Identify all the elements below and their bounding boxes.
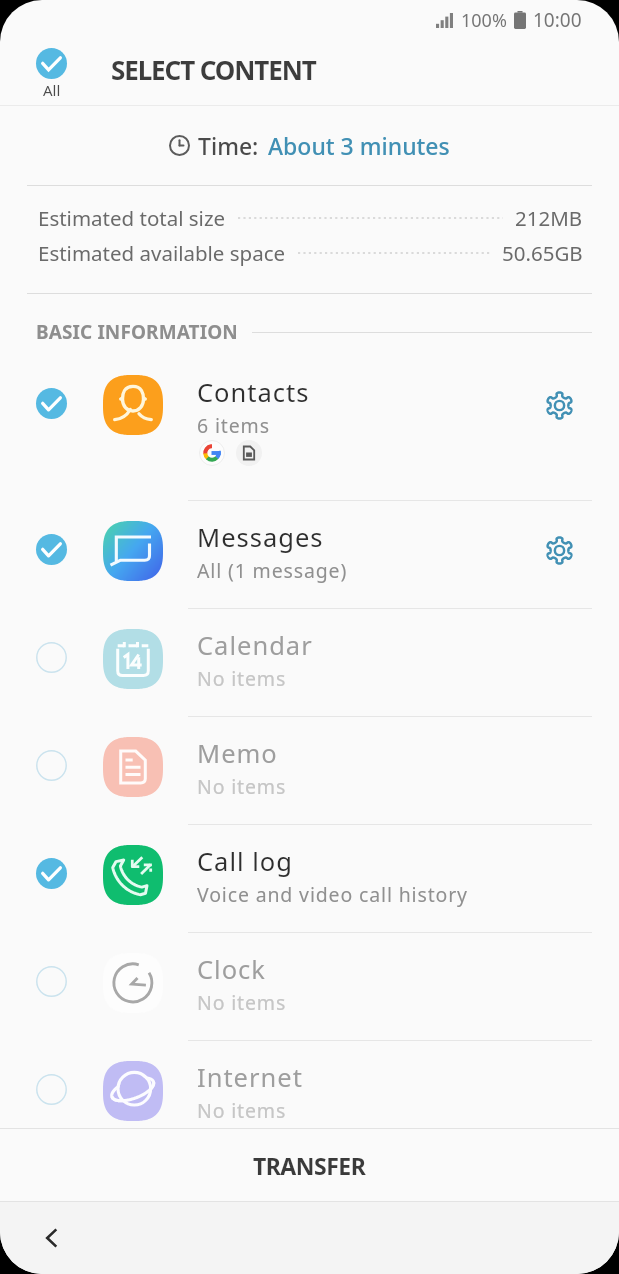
- staticText: About 3 minutes: [268, 130, 450, 161]
- staticText: 212MB: [515, 204, 583, 232]
- staticText: 10:00: [533, 7, 582, 33]
- staticText: TRANSFER: [253, 1150, 366, 1181]
- button[interactable]: Messages: [0, 501, 619, 608]
- button[interactable]: Call log: [0, 825, 619, 932]
- button[interactable]: Memo: [0, 717, 619, 824]
- staticText: All (1 message): [197, 557, 348, 584]
- button[interactable]: All: [20, 40, 83, 100]
- staticText: Call log: [197, 844, 293, 879]
- button[interactable]: Clock: [0, 933, 619, 1040]
- button[interactable]: Messages settings: [499, 501, 619, 608]
- staticText: No items: [197, 773, 287, 800]
- staticText: Clock: [197, 952, 266, 987]
- staticText: Calendar: [197, 628, 313, 663]
- staticText: Memo: [197, 736, 278, 771]
- button[interactable]: TRANSFER: [0, 1129, 619, 1201]
- staticText: SELECT CONTENT: [111, 52, 316, 87]
- staticText: Contacts: [197, 375, 310, 410]
- staticText: Internet: [197, 1060, 303, 1095]
- staticText: Time:: [198, 130, 259, 161]
- staticText: 100%: [461, 8, 507, 33]
- button[interactable]: Calendar: [0, 609, 619, 716]
- staticText: Estimated available space: [38, 239, 286, 267]
- button[interactable]: Back: [28, 1214, 76, 1262]
- staticText: 50.65GB: [502, 239, 583, 267]
- staticText: Estimated total size: [38, 204, 226, 232]
- staticText: Voice and video call history: [197, 881, 468, 908]
- button[interactable]: Contacts: [0, 353, 619, 500]
- staticText: BASIC INFORMATION: [36, 319, 238, 345]
- staticText: No items: [197, 989, 287, 1016]
- staticText: No items: [197, 1097, 287, 1124]
- button[interactable]: Internet: [0, 1041, 619, 1148]
- button[interactable]: Contacts settings: [499, 353, 619, 457]
- staticText: All: [43, 80, 61, 100]
- staticText: 6 items: [197, 412, 270, 439]
- staticText: Messages: [197, 520, 324, 555]
- staticText: No items: [197, 665, 287, 692]
